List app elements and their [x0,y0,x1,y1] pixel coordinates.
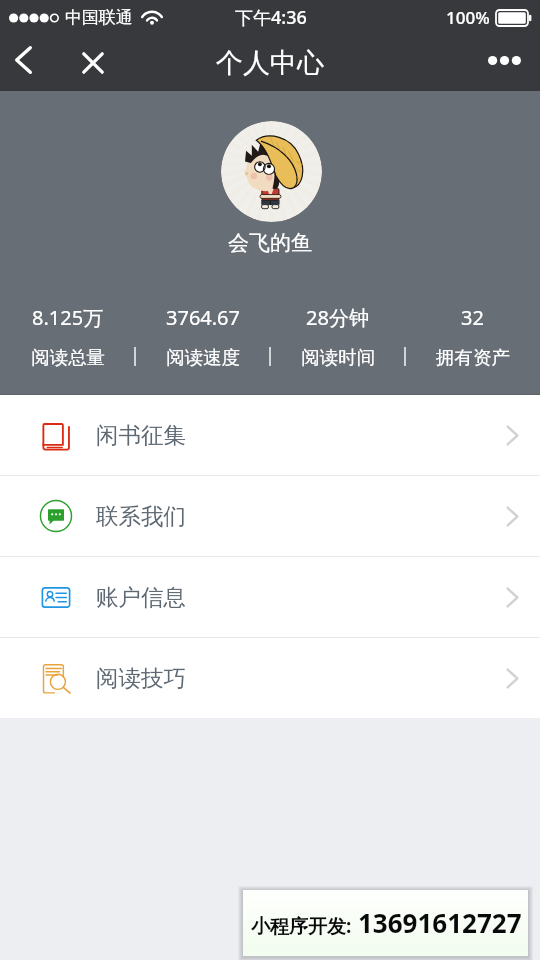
staticText: 下午4:36 [235,5,307,30]
staticText: 个人中心 [216,46,324,80]
button[interactable]: 阅读技巧 [0,638,540,718]
button[interactable]: 28分钟 [270,301,405,381]
staticText: 8.125万 [32,304,104,331]
staticText: 100% [446,6,490,29]
button[interactable]: 小程序开发: [243,890,528,956]
staticText: 拥有资产 [436,346,510,369]
button[interactable]: 3764.67 [135,301,270,381]
staticText: 13691612727 [358,905,522,940]
staticText: 账户信息 [96,583,186,611]
staticText: 小程序开发: [251,913,352,939]
staticText: 32 [461,304,484,331]
staticText: 阅读技巧 [96,664,186,692]
button[interactable]: Close [70,39,116,87]
staticText: 闲书征集 [96,421,186,449]
staticText: 3764.67 [166,304,240,331]
staticText: 阅读时间 [301,346,375,369]
button[interactable]: 闲书征集 [0,395,540,475]
button[interactable]: Avatar [221,121,322,222]
button[interactable]: 联系我们 [0,476,540,556]
staticText: 阅读总量 [31,346,105,369]
staticText: 28分钟 [306,304,369,331]
button[interactable]: More options [481,36,527,84]
button[interactable]: Back [0,36,46,84]
staticText: 阅读速度 [166,346,240,369]
staticText: 联系我们 [96,502,186,530]
button[interactable]: 账户信息 [0,557,540,637]
button[interactable]: 32 [405,301,540,381]
button[interactable]: 8.125万 [0,301,135,381]
staticText: 会飞的鱼 [228,230,312,256]
staticText: 中国联通 [65,7,133,28]
